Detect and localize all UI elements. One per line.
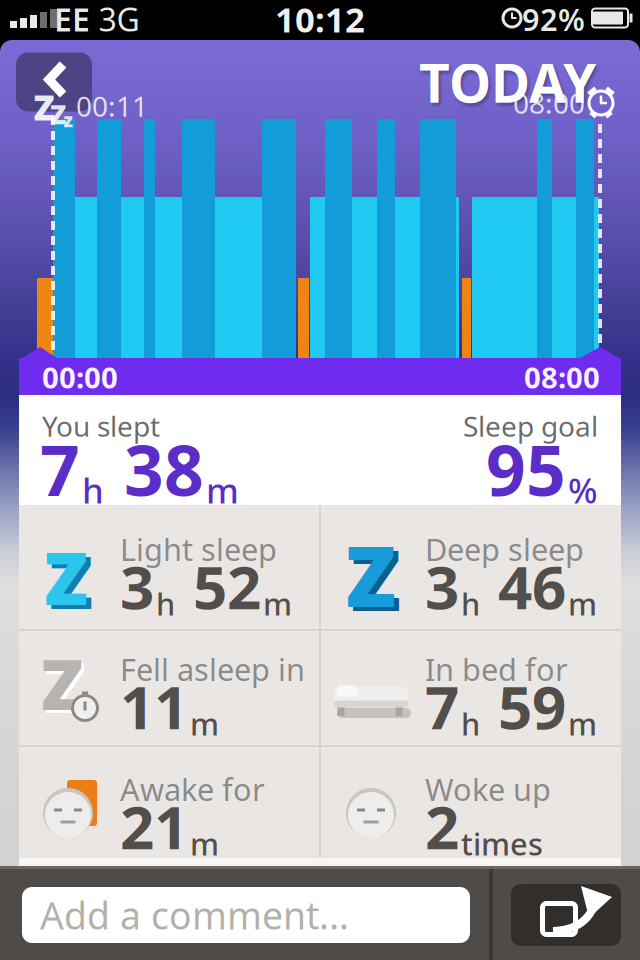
staticText: m (263, 583, 292, 624)
staticText: m (206, 467, 239, 513)
staticText: 46 (482, 546, 566, 626)
staticText: Awake for (120, 769, 265, 809)
staticText: m (190, 823, 219, 864)
staticText: 08:00 (524, 357, 600, 396)
staticText: Z (44, 529, 88, 625)
staticText: EE (54, 0, 90, 40)
staticText: z (63, 108, 72, 132)
staticText: Z (50, 96, 66, 132)
staticText: times (461, 823, 543, 864)
staticText: 21 (120, 786, 188, 866)
staticText: Z (49, 533, 93, 629)
staticText: Light sleep (120, 529, 277, 569)
staticText: Fell asleep in (120, 649, 305, 689)
staticText: m (568, 703, 597, 744)
staticText: 3 (120, 546, 154, 626)
staticText: Z (44, 640, 86, 732)
staticText: 10:12 (275, 0, 365, 42)
staticText: Add a comment... (40, 890, 349, 940)
staticText: Z (350, 524, 401, 634)
staticText: In bed for (425, 649, 568, 689)
staticText: 00:00 (42, 357, 118, 396)
staticText: 2 (425, 786, 459, 866)
staticText: h (156, 583, 175, 624)
staticText: h (82, 467, 104, 513)
staticText: You slept (42, 407, 160, 445)
staticText: 38 (106, 423, 204, 515)
staticText: 95 (486, 423, 566, 515)
staticText: m (190, 703, 219, 744)
staticText: 3G (98, 0, 139, 40)
staticText: % (568, 467, 598, 513)
staticText: 11 (120, 666, 188, 746)
staticText: Sleep goal (463, 407, 598, 445)
button[interactable] (16, 52, 92, 111)
staticText: h (461, 583, 480, 624)
staticText: 52 (177, 546, 261, 626)
staticText: 7 (425, 666, 459, 746)
staticText: Z (345, 520, 396, 630)
staticText: h (461, 703, 480, 744)
button[interactable] (511, 884, 621, 946)
staticText: 3 (425, 546, 459, 626)
staticText: 08:00 (513, 84, 585, 122)
staticText: TODAY (419, 47, 596, 117)
staticText: Woke up (425, 769, 551, 809)
staticText: 00:11 (76, 87, 148, 125)
staticText: Z (33, 84, 54, 130)
staticText: m (568, 583, 597, 624)
button[interactable]: Add a comment... (22, 887, 470, 943)
staticText: 92% (522, 0, 585, 39)
staticText: 59 (482, 666, 566, 746)
staticText: Z (41, 637, 83, 729)
staticText: Deep sleep (425, 529, 584, 569)
staticText: 7 (40, 423, 80, 515)
